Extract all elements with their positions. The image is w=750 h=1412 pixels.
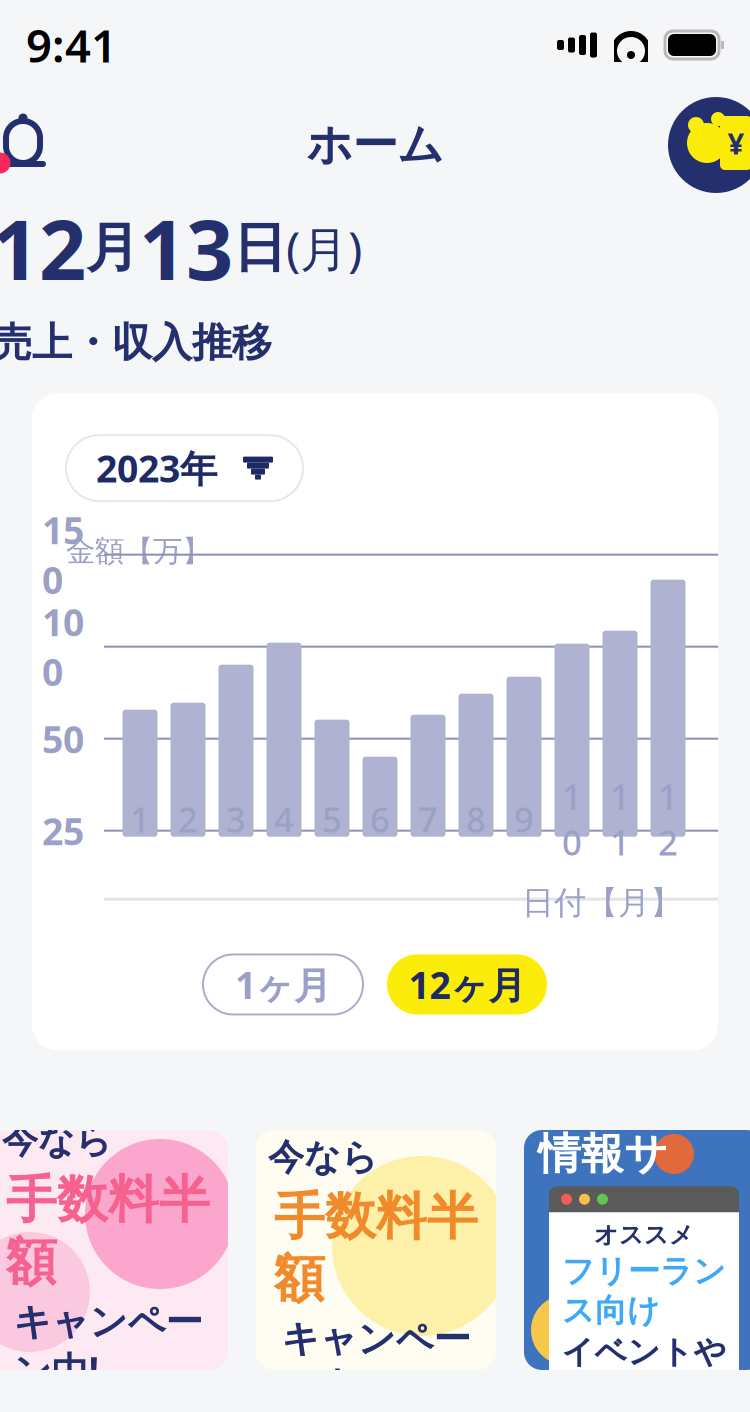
staticText: 25 [42, 806, 84, 855]
button[interactable]: FinFinカード決済 [256, 1130, 496, 1370]
staticText: フリーランス専用 [550, 1005, 699, 1064]
staticText: 5 [322, 796, 342, 842]
staticText: 今なら [268, 1135, 378, 1179]
staticText: 手数料半額 [274, 1186, 478, 1310]
staticText: 月 [86, 215, 139, 281]
staticText: 13 [139, 193, 233, 303]
staticText: ホーム [306, 117, 443, 173]
staticText: ¥ [727, 123, 744, 162]
staticText: 2023年 [96, 443, 217, 493]
staticText: 今なら [2, 1118, 112, 1163]
staticText: 9 [514, 796, 534, 842]
staticText: 9:41 [26, 15, 117, 75]
button[interactable]: 1ヶ月 [203, 954, 363, 1014]
staticText: 2 [178, 796, 198, 842]
staticText: (月) [286, 216, 362, 280]
staticText: 1 [130, 796, 150, 842]
button[interactable]: フリーランス専用 [524, 1130, 750, 1370]
button[interactable]: 通知 [0, 108, 60, 182]
staticText: 11 [610, 773, 630, 865]
staticText: 日 [233, 215, 286, 281]
staticText: FinFinファクタリング [7, 1027, 209, 1112]
staticText: 10 [562, 773, 582, 865]
staticText: 手数料半額 [6, 1169, 210, 1293]
button[interactable]: 2023年 [66, 435, 303, 501]
button[interactable]: FinFinファクタリング [0, 1130, 228, 1370]
staticText: 50 [42, 714, 84, 763]
staticText: フリーランス向け [562, 1252, 726, 1330]
staticText: 7 [418, 796, 438, 842]
staticText: 1ヶ月 [235, 960, 331, 1009]
staticText: 4 [274, 796, 294, 842]
staticText: 12 [0, 193, 86, 303]
staticText: キャンペーン中! [13, 1299, 202, 1395]
staticText: イベント情報サ [538, 1075, 714, 1180]
staticText: イベントやセミナ [561, 1332, 726, 1411]
staticText: キャンペーン中! [281, 1316, 470, 1411]
staticText: 100 [42, 597, 84, 696]
staticText: 150 [42, 505, 84, 604]
staticText: オススメ [594, 1220, 694, 1250]
staticText: 12ヶ月 [408, 960, 525, 1009]
staticText: 12 [658, 773, 678, 865]
staticText: 売上・収入推移 [0, 318, 272, 367]
staticText: 8 [466, 796, 486, 842]
button[interactable]: 12ヶ月 [387, 954, 547, 1014]
staticText: FinFinカード決済 [271, 1040, 480, 1129]
staticText: 6 [370, 796, 390, 842]
staticText: 3 [226, 796, 246, 842]
staticText: 金額【万】 [66, 533, 211, 569]
button[interactable]: マイページ [668, 97, 750, 193]
staticText: 日付【月】 [522, 883, 682, 922]
